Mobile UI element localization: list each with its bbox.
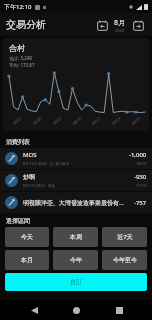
staticText: 今年: [70, 256, 82, 264]
staticText: 選擇區間: [6, 217, 30, 225]
button[interactable]: 今年: [53, 250, 98, 270]
button[interactable]: 今天: [5, 227, 49, 247]
staticText: 08/07: [52, 115, 63, 126]
staticText: 2020: [115, 28, 125, 33]
staticText: 17.3%: [136, 183, 147, 188]
button[interactable]: 本周: [53, 227, 98, 247]
staticText: 8月11日 2020 王+家+超卡: [23, 161, 70, 166]
staticText: 交易分析: [6, 18, 46, 31]
staticText: 08/21: [91, 115, 102, 126]
staticText: 8月: [114, 18, 126, 28]
staticText: 本周: [70, 233, 82, 241]
button[interactable]: Recent apps: [110, 301, 128, 319]
staticText: -1,000: [129, 151, 147, 159]
staticText: 18.6%: [136, 161, 147, 166]
staticText: 合村: [9, 43, 25, 53]
staticText: 本月: [21, 256, 33, 264]
button[interactable]: 合村: [3, 38, 149, 131]
staticText: 明視陳洋亞、大灣發波造事業股份有…: [23, 199, 124, 207]
staticText: 08/01: [12, 115, 23, 126]
staticText: 08/04: [32, 115, 43, 126]
staticText: 自訂: [70, 278, 82, 286]
staticText: 8月1日 2020 現金: [23, 183, 56, 188]
staticText: -757: [134, 199, 147, 207]
staticText: MOS: [23, 151, 37, 159]
staticText: 平均: 173.87: [9, 62, 35, 68]
button[interactable]: Next month: [130, 17, 146, 33]
button[interactable]: 近7天: [102, 227, 147, 247]
staticText: 08/31: [131, 115, 142, 126]
button[interactable]: 今年至今: [102, 250, 147, 270]
button[interactable]: 明視陳洋亞、大灣發波造事業股份有…: [0, 192, 152, 213]
staticText: 08/10: [72, 115, 83, 126]
button[interactable]: 自訂: [5, 273, 147, 291]
button[interactable]: Home: [67, 301, 85, 319]
button[interactable]: 炒啊: [0, 170, 152, 191]
staticText: 今年至今: [113, 256, 137, 264]
button[interactable]: Back: [25, 301, 43, 319]
button[interactable]: 8月: [114, 18, 126, 33]
staticText: 炒啊: [23, 173, 35, 181]
staticText: 近7天: [117, 233, 133, 241]
staticText: 今天: [21, 233, 33, 241]
staticText: 08/24: [111, 115, 122, 126]
staticText: 合計: 5,248: [9, 55, 32, 61]
button[interactable]: Previous month: [94, 17, 110, 33]
staticText: 消費列表: [6, 138, 30, 146]
button[interactable]: 本月: [5, 250, 49, 270]
button[interactable]: MOS: [0, 148, 152, 169]
staticText: -930: [134, 173, 147, 181]
staticText: 下午12:10: [4, 3, 32, 11]
